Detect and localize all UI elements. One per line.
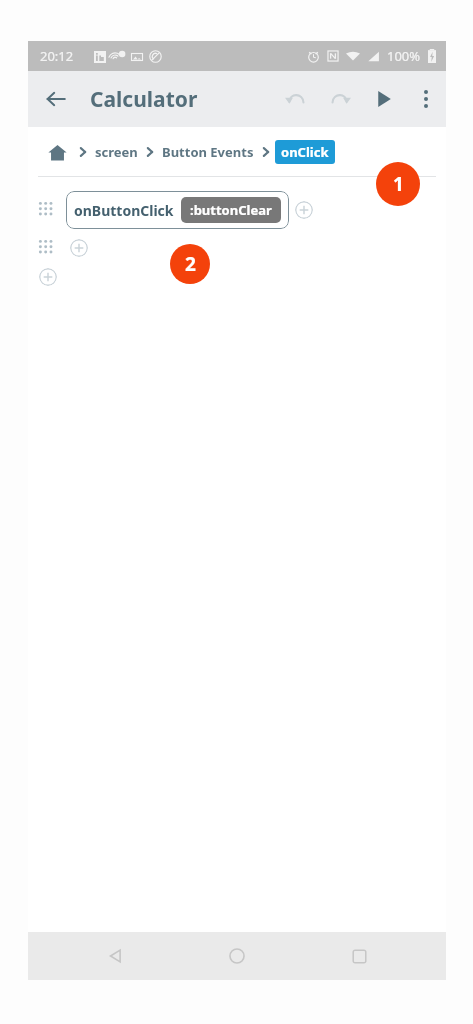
staticText: Calculator bbox=[90, 85, 198, 114]
button[interactable]: Run bbox=[362, 77, 406, 121]
button[interactable]: Add block bbox=[70, 239, 88, 257]
button[interactable]: screen bbox=[92, 140, 141, 164]
button[interactable]: Back bbox=[92, 933, 138, 979]
button[interactable]: Add event bbox=[39, 268, 57, 286]
button[interactable]: Drag bbox=[38, 239, 56, 257]
staticText: screen bbox=[95, 143, 138, 161]
button[interactable]: Redo bbox=[318, 77, 362, 121]
staticText: 2 bbox=[185, 251, 196, 277]
button[interactable]: :buttonClear bbox=[181, 197, 281, 223]
button[interactable]: Add parameter bbox=[295, 201, 313, 219]
button[interactable]: Undo bbox=[274, 77, 318, 121]
staticText: onButtonClick bbox=[74, 201, 174, 220]
button[interactable]: Home bbox=[40, 135, 74, 169]
button[interactable]: Drag bbox=[38, 201, 56, 219]
button[interactable]: Back bbox=[36, 79, 76, 119]
button[interactable]: Button Events bbox=[159, 140, 257, 164]
staticText: 20:12 bbox=[40, 47, 74, 65]
staticText: :buttonClear bbox=[190, 201, 272, 219]
staticText: 100% bbox=[387, 47, 421, 65]
button[interactable]: onButtonClick bbox=[66, 191, 289, 229]
button[interactable]: onClick bbox=[275, 140, 335, 164]
staticText: Button Events bbox=[162, 143, 254, 161]
button[interactable]: Recent apps bbox=[336, 933, 382, 979]
staticText: onClick bbox=[281, 143, 329, 161]
staticText: 1 bbox=[393, 171, 404, 197]
button[interactable]: More options bbox=[406, 79, 446, 119]
button[interactable]: Home bbox=[214, 933, 260, 979]
